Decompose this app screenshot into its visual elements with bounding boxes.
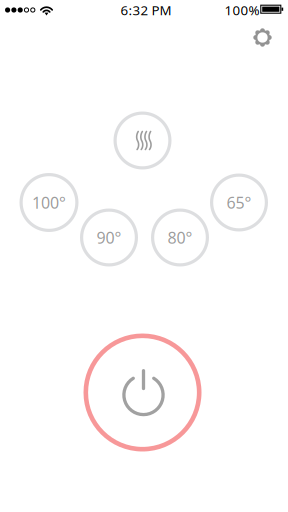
button[interactable]: 100° (19, 173, 78, 232)
button[interactable]: 80° (151, 208, 209, 266)
button[interactable]: Power (83, 333, 201, 451)
staticText: 100° (32, 192, 66, 213)
button[interactable]: Heat (113, 111, 171, 169)
button[interactable]: 65° (210, 173, 268, 231)
staticText: 6:32 PM (120, 1, 171, 19)
staticText: 90° (96, 227, 121, 248)
button[interactable]: Settings (245, 20, 279, 54)
staticText: 80° (167, 227, 192, 248)
staticText: 100% (224, 1, 259, 19)
staticText: 65° (226, 192, 251, 213)
button[interactable]: 90° (80, 208, 138, 266)
